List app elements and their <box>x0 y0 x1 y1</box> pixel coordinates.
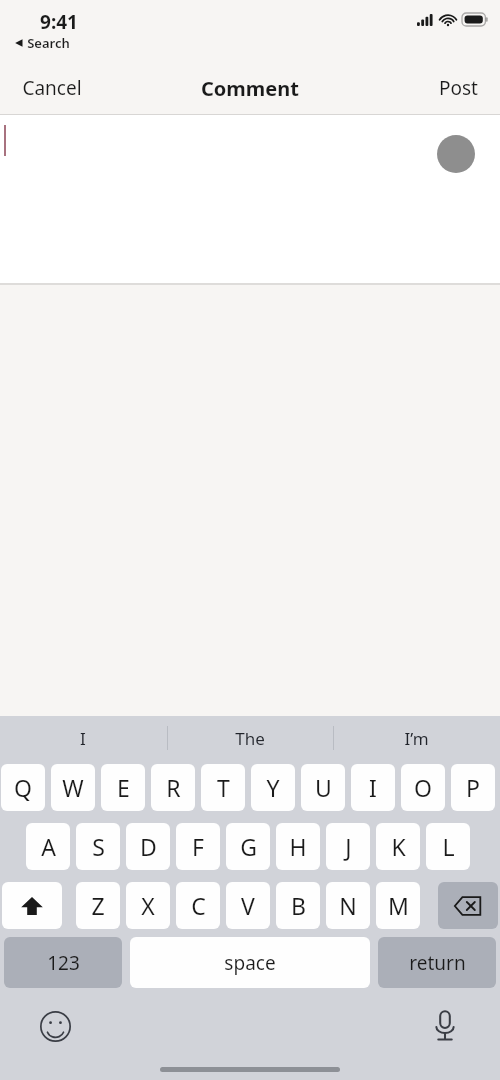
staticText: X <box>141 890 155 921</box>
button[interactable]: W <box>51 764 95 811</box>
button[interactable]: Z <box>76 882 120 929</box>
staticText: I’m <box>404 727 429 750</box>
button[interactable]: A <box>26 823 70 870</box>
button[interactable]: space <box>130 937 370 988</box>
button[interactable]: Cancel <box>0 65 104 111</box>
staticText: 9:41 <box>40 9 78 35</box>
button[interactable]: C <box>176 882 220 929</box>
staticText: P <box>466 772 480 803</box>
staticText: Y <box>266 772 280 803</box>
button[interactable]: Emoji <box>34 1005 76 1047</box>
staticText: C <box>191 890 206 921</box>
button[interactable]: L <box>426 823 470 870</box>
staticText: W <box>62 772 84 803</box>
button[interactable]: Dictation <box>424 1005 466 1047</box>
button[interactable]: O <box>401 764 445 811</box>
staticText: M <box>388 890 409 921</box>
staticText: return <box>409 950 466 976</box>
button[interactable]: T <box>201 764 245 811</box>
button[interactable]: N <box>326 882 370 929</box>
staticText: Search <box>27 34 70 52</box>
button[interactable]: H <box>276 823 320 870</box>
button[interactable]: E <box>101 764 145 811</box>
button[interactable]: S <box>76 823 120 870</box>
staticText: A <box>41 831 56 862</box>
staticText: J <box>345 831 352 862</box>
staticText: K <box>391 831 406 862</box>
staticText: Comment <box>201 75 299 102</box>
staticText: The <box>235 727 265 750</box>
button[interactable]: V <box>226 882 270 929</box>
button[interactable]: B <box>276 882 320 929</box>
staticText: O <box>414 772 432 803</box>
staticText: space <box>224 950 276 976</box>
button[interactable]: Backspace <box>438 882 498 929</box>
staticText: Q <box>14 772 32 803</box>
button[interactable] <box>0 115 500 283</box>
button[interactable]: Q <box>1 764 45 811</box>
button[interactable]: X <box>126 882 170 929</box>
button[interactable]: U <box>301 764 345 811</box>
button[interactable]: I’m <box>333 716 500 760</box>
staticText: E <box>117 772 130 803</box>
button[interactable]: R <box>151 764 195 811</box>
button[interactable]: G <box>226 823 270 870</box>
staticText: N <box>339 890 357 921</box>
button[interactable]: return <box>378 937 496 988</box>
staticText: U <box>315 772 332 803</box>
button[interactable]: I <box>351 764 395 811</box>
button[interactable]: D <box>126 823 170 870</box>
button[interactable]: M <box>376 882 420 929</box>
button[interactable]: F <box>176 823 220 870</box>
button[interactable]: K <box>376 823 420 870</box>
button[interactable]: The <box>166 716 333 760</box>
staticText: D <box>140 831 157 862</box>
staticText: S <box>92 831 105 862</box>
staticText: F <box>192 831 204 862</box>
button[interactable]: I <box>0 716 166 760</box>
button[interactable]: J <box>326 823 370 870</box>
staticText: Cancel <box>22 75 82 101</box>
staticText: L <box>442 831 455 862</box>
staticText: I <box>369 772 377 803</box>
staticText: H <box>289 831 307 862</box>
button[interactable]: P <box>451 764 495 811</box>
staticText: R <box>166 772 181 803</box>
staticText: T <box>217 772 230 803</box>
button[interactable]: Shift <box>2 882 62 929</box>
button[interactable]: Y <box>251 764 295 811</box>
staticText: Z <box>91 890 105 921</box>
button[interactable]: 123 <box>4 937 122 988</box>
button[interactable]: Post <box>417 65 500 111</box>
staticText: B <box>291 890 306 921</box>
staticText: V <box>241 890 255 921</box>
staticText: Post <box>439 75 478 101</box>
staticText: G <box>240 831 257 862</box>
staticText: 123 <box>47 950 80 976</box>
staticText: I <box>80 727 86 750</box>
